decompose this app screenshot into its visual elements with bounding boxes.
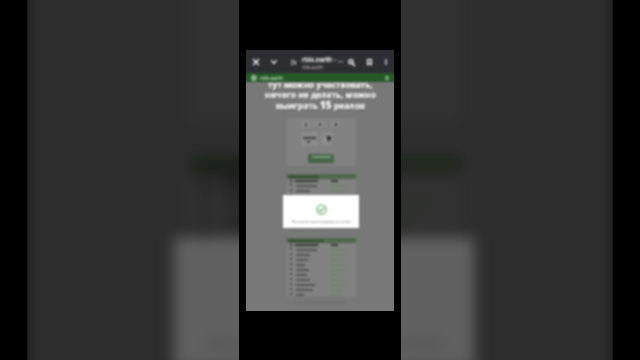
button[interactable]: Search — [345, 56, 357, 68]
button[interactable]: Nickname field — [301, 132, 318, 146]
staticText: выиграть 15 реалов — [276, 98, 365, 112]
staticText: ничего не делать, можно — [265, 89, 376, 101]
button[interactable]: Avatar preview — [321, 132, 333, 145]
button[interactable]: Submit — [308, 154, 334, 163]
staticText: тут можно участвовать, — [269, 80, 374, 92]
button[interactable]: Submit — [273, 76, 375, 111]
button[interactable]: Page settings — [287, 56, 299, 68]
staticText: Вы успешно зарегистрированы в системе — [292, 220, 351, 224]
staticText: rblx.earth - … – – — [302, 55, 348, 64]
button[interactable]: Tab option — [331, 121, 340, 127]
button[interactable]: Close — [250, 56, 262, 68]
staticText: Вы успешно зарегистрированы в системе — [209, 336, 442, 352]
button[interactable]: Tab option — [314, 121, 326, 127]
staticText: rblx.earth — [260, 75, 284, 82]
button[interactable]: More options — [380, 56, 392, 68]
staticText: ничего не делать, можно — [266, 90, 377, 102]
button[interactable]: Bookmark — [363, 56, 375, 68]
staticText: выиграть 15 реалов — [277, 99, 366, 113]
staticText: rblx.earth — [302, 64, 324, 70]
staticText: тут можно участвовать, — [268, 79, 373, 91]
button[interactable]: Collapse — [268, 56, 280, 68]
button[interactable]: Tab option — [301, 121, 311, 127]
